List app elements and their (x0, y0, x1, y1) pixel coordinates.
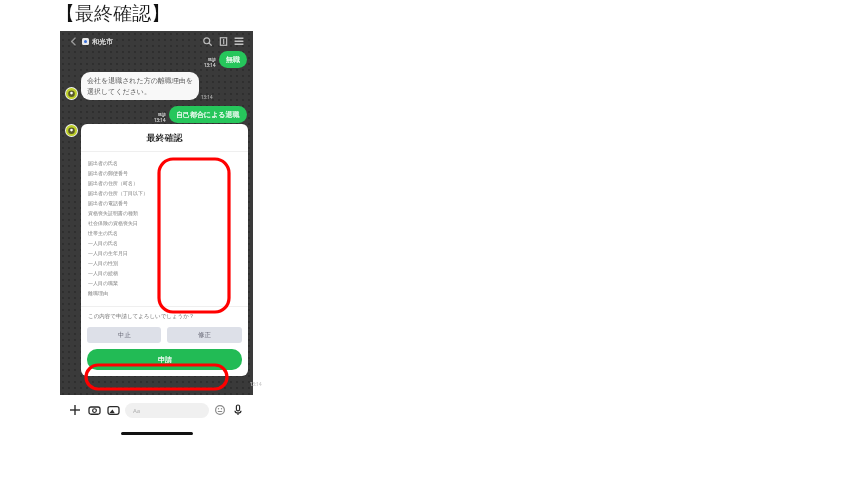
staticText: 修正 (198, 331, 211, 339)
staticText: 届出者の電話番号 (88, 200, 129, 206)
button[interactable]: Gallery (105, 402, 121, 418)
button[interactable]: Menu (231, 33, 247, 49)
staticText: 既読 (208, 57, 216, 62)
staticText: 和光市 (92, 37, 113, 46)
staticText: 会社を退職された方の離職理由を (87, 76, 193, 85)
staticText: 一人目の生年月日 (88, 250, 129, 256)
button[interactable]: 自己都合による退職 (169, 106, 247, 123)
staticText: 届出者の郵便番号 (88, 170, 129, 176)
button[interactable]: Profile (65, 124, 78, 137)
staticText: 資格喪失証明書の種類 (88, 210, 139, 216)
button[interactable]: Profile (65, 87, 78, 100)
staticText: 一人目の性別 (88, 260, 119, 266)
staticText: 13:14 (204, 62, 216, 68)
staticText: 無職 (226, 55, 240, 64)
staticText: 13:14 (250, 381, 262, 387)
staticText: 中止 (118, 331, 131, 339)
staticText: 既読 (158, 112, 166, 117)
staticText: 一人目の職業 (88, 280, 119, 286)
staticText: この内容で申請してよろしいでしょうか？ (88, 313, 195, 320)
button[interactable]: Camera (86, 402, 102, 418)
staticText: 最終確認 (81, 132, 248, 143)
button[interactable]: Emoji (212, 402, 228, 418)
button[interactable]: Notes (215, 33, 231, 49)
button[interactable]: 修正 (167, 327, 242, 343)
staticText: 届出者の住所（丁目以下） (88, 190, 149, 196)
button[interactable]: 中止 (87, 327, 161, 343)
staticText: 世帯主の氏名 (88, 230, 119, 236)
staticText: Aa (133, 407, 141, 415)
staticText: 申請 (158, 355, 172, 364)
staticText: 【最終確認】 (56, 2, 170, 26)
staticText: 離職理由 (88, 290, 108, 296)
button[interactable]: Aa (125, 403, 209, 418)
staticText: 届出者の氏名 (88, 160, 119, 166)
staticText: 一人目の続柄 (88, 270, 119, 276)
staticText: 自己都合による退職 (176, 110, 240, 119)
button[interactable]: 無職 (219, 51, 247, 68)
button[interactable]: 申請 (87, 349, 242, 370)
button[interactable]: Search (199, 33, 215, 49)
staticText: 一人目の氏名 (88, 240, 119, 246)
button[interactable]: Add (67, 402, 83, 418)
staticText: 選択してください。 (87, 87, 151, 96)
staticText: 13:14 (154, 117, 166, 123)
staticText: 社会保険の資格喪失日 (88, 220, 139, 226)
button[interactable]: Voice message (230, 402, 246, 418)
button[interactable]: 会社を退職された方の離職理由を (81, 72, 199, 100)
staticText: 届出者の住所（町名） (88, 180, 139, 186)
button[interactable]: Back (66, 34, 80, 48)
staticText: 13:14 (201, 94, 213, 100)
